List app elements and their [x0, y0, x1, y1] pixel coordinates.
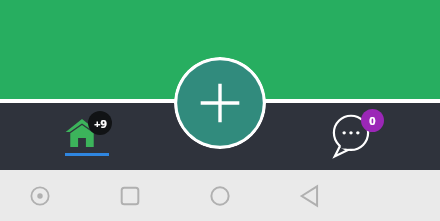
staticText: +9	[94, 116, 107, 131]
button[interactable]: Messages	[318, 103, 398, 170]
button[interactable]: Add	[174, 57, 266, 149]
button[interactable]: Back	[294, 180, 326, 212]
staticText: 0	[369, 113, 376, 128]
button[interactable]: Recents	[114, 180, 146, 212]
button[interactable]: Home	[204, 180, 236, 212]
button[interactable]: Screen record	[24, 180, 56, 212]
button[interactable]: +9	[44, 103, 132, 170]
